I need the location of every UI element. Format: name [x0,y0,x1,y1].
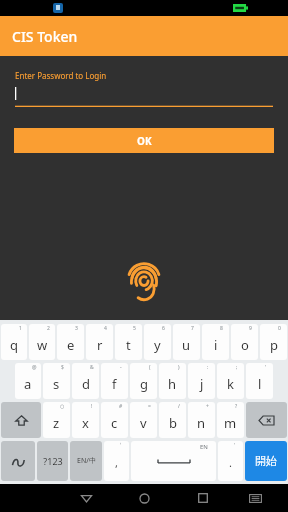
button[interactable]: / [159,402,186,438]
button[interactable]: OK [14,128,274,153]
button[interactable]: ' [246,363,273,399]
staticText: ! [91,403,93,410]
staticText: l [258,375,262,393]
staticText: = [148,403,151,410]
staticText: f [112,375,117,393]
button[interactable]: ' [218,441,243,481]
staticText: y [154,336,161,354]
staticText: 9 [249,325,252,332]
button[interactable]: ; [217,363,244,399]
button[interactable]: 6 [144,324,171,360]
staticText: # [119,403,123,410]
staticText: 8 [220,325,223,332]
staticText: CIS Token [12,27,78,46]
staticText: a [24,375,32,393]
staticText: + [206,403,209,410]
staticText: OK [137,134,152,148]
staticText: . [229,455,232,470]
button[interactable]: 1 [1,324,27,360]
button[interactable]: EN/中 [70,441,102,481]
button[interactable]: 2 [29,324,55,360]
staticText: ? [235,403,238,410]
staticText: n [197,414,206,432]
staticText: , [115,455,118,470]
staticText: 開始 [255,454,277,468]
staticText: e [67,336,75,354]
staticText: ' [265,364,267,371]
button[interactable]: Space [131,441,216,481]
staticText: EN [200,443,208,451]
button[interactable]: Backspace [246,402,287,438]
button[interactable]: Shift [1,402,41,438]
staticText: q [10,336,18,354]
button[interactable]: ˈ [104,441,129,481]
staticText: o [241,336,249,354]
staticText: j [200,375,204,393]
button[interactable]: Home [134,484,154,512]
staticText: 7 [191,325,194,332]
staticText: 3 [75,325,78,332]
staticText: m [224,414,237,432]
staticText: p [270,336,278,354]
button[interactable]: = [130,402,157,438]
staticText: d [82,375,90,393]
staticText: s [53,375,60,393]
button[interactable]: 4 [86,324,113,360]
staticText: ?123 [43,455,63,467]
staticText: - [120,364,122,371]
button[interactable]: ! [72,402,99,438]
staticText: EN/中 [77,456,96,466]
staticText: x [82,414,89,432]
staticText: g [140,375,148,393]
staticText: w [37,336,48,354]
button[interactable]: 3 [57,324,84,360]
button[interactable]: 7 [173,324,200,360]
staticText: / [178,403,180,410]
staticText: @ [32,364,37,371]
staticText: h [168,375,177,393]
staticText: t [126,336,131,354]
button[interactable]: Handwriting input [1,441,35,481]
button[interactable]: 9 [231,324,258,360]
staticText: i [214,336,218,354]
button[interactable]: Fingerprint login [127,262,161,296]
button[interactable]: + [188,402,215,438]
button[interactable]: 5 [115,324,142,360]
staticText: 4 [104,325,107,332]
button[interactable]: 開始 [245,441,287,481]
button[interactable]: & [72,363,99,399]
button[interactable]: ? [217,402,244,438]
button[interactable]: ) [159,363,186,399]
staticText: k [227,375,234,393]
button[interactable]: - [101,363,128,399]
button[interactable]: ?123 [37,441,68,481]
staticText: 1 [19,325,22,332]
staticText: ) [178,364,180,371]
staticText: ' [234,442,236,449]
button[interactable] [15,85,273,107]
staticText: b [169,414,177,432]
staticText: $ [61,364,64,371]
staticText: ˈ [120,442,121,449]
staticText: 0 [278,325,281,332]
button[interactable]: 0 [260,324,287,360]
button[interactable]: Switch keyboard [245,484,265,512]
button[interactable]: 8 [202,324,229,360]
button[interactable]: ( [130,363,157,399]
button[interactable]: # [101,402,128,438]
staticText: ; [236,364,238,371]
staticText: ○ [60,403,65,409]
staticText: : [207,364,209,371]
button[interactable]: : [188,363,215,399]
button[interactable]: Recent apps [193,484,213,512]
staticText: ( [149,364,151,371]
staticText: c [111,414,118,432]
staticText: u [182,336,191,354]
button[interactable]: @ [15,363,41,399]
button[interactable]: Back [76,484,96,512]
staticText: r [97,336,103,354]
button[interactable]: ○ [43,402,70,438]
button[interactable]: $ [43,363,70,399]
staticText: v [140,414,147,432]
staticText: Enter Password to Login [15,70,107,81]
